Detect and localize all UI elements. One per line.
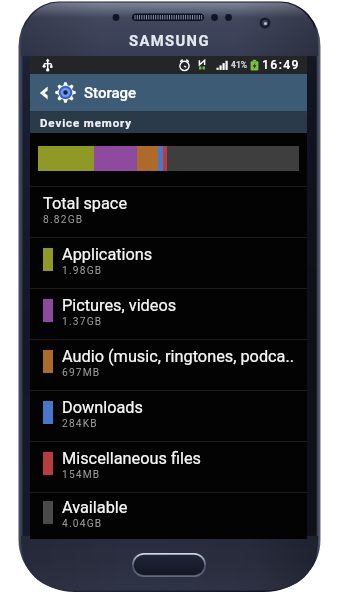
staticText: Total space xyxy=(43,194,128,213)
staticText: Device memory xyxy=(40,116,132,129)
staticText: 8.82GB xyxy=(43,214,84,226)
staticText: Applications xyxy=(62,245,153,264)
button[interactable]: Audio (music, ringtones, podca.. xyxy=(30,339,307,390)
button[interactable]: Downloads xyxy=(30,390,307,441)
staticText: 16:49 xyxy=(262,58,300,72)
staticText: 284KB xyxy=(62,418,98,430)
button[interactable]: Miscellaneous files xyxy=(30,441,307,492)
staticText: Pictures, videos xyxy=(62,296,177,315)
staticText: 154MB xyxy=(62,469,101,481)
staticText: Audio (music, ringtones, podca.. xyxy=(62,347,295,366)
staticText: Miscellaneous files xyxy=(62,449,201,468)
staticText: 1.98GB xyxy=(62,265,103,277)
button[interactable]: Home xyxy=(132,553,206,577)
staticText: SAMSUNG xyxy=(129,32,210,49)
staticText: Available xyxy=(62,498,128,517)
staticText: 41% xyxy=(231,60,248,70)
staticText: 4.04GB xyxy=(62,518,103,530)
button[interactable]: Navigate up xyxy=(30,74,141,111)
button[interactable]: Total space xyxy=(30,186,307,237)
button[interactable]: Available xyxy=(30,492,307,539)
button[interactable]: Pictures, videos xyxy=(30,288,307,339)
button[interactable]: Applications xyxy=(30,237,307,288)
staticText: 1.37GB xyxy=(62,316,103,328)
staticText: Storage xyxy=(84,84,137,102)
staticText: 697MB xyxy=(62,367,101,379)
staticText: Downloads xyxy=(62,398,143,417)
